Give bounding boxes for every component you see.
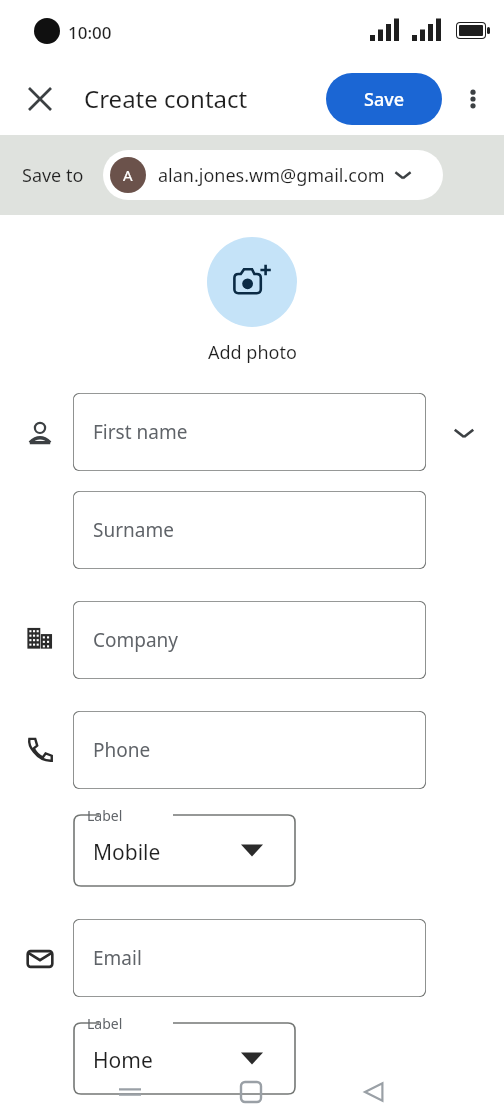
staticText: Add photo [208,340,297,365]
staticText: alan.jones.wm@gmail.com [158,163,385,188]
button[interactable]: Surname [73,491,426,569]
staticText: Save [364,87,405,112]
staticText: Create contact [84,82,248,115]
button[interactable]: Save [326,73,442,125]
button[interactable]: Expand name fields [444,413,484,453]
staticText: Label [87,1014,123,1033]
button[interactable]: Label [73,1017,296,1095]
staticText: First name [93,419,188,445]
staticText: Phone [93,737,151,763]
staticText: 10:00 [68,21,112,44]
staticText: Email [93,945,142,971]
button[interactable]: Label [73,809,296,887]
staticText: A [123,165,133,185]
button[interactable]: First name [73,393,426,471]
button[interactable]: Add photo [207,237,297,327]
button[interactable]: Close [14,73,66,125]
staticText: Home [93,1046,153,1075]
button[interactable]: Phone [73,711,426,789]
staticText: Mobile [93,838,161,867]
button[interactable]: Back [350,1068,398,1116]
button[interactable]: A [103,150,443,200]
button[interactable]: Recent apps [106,1068,154,1116]
staticText: Surname [93,517,174,543]
button[interactable]: Email [73,919,426,997]
button[interactable]: More options [449,75,497,123]
button[interactable]: Home [227,1068,275,1116]
staticText: Save to [22,163,84,188]
staticText: Company [93,627,179,653]
button[interactable]: Company [73,601,426,679]
staticText: Label [87,806,123,825]
